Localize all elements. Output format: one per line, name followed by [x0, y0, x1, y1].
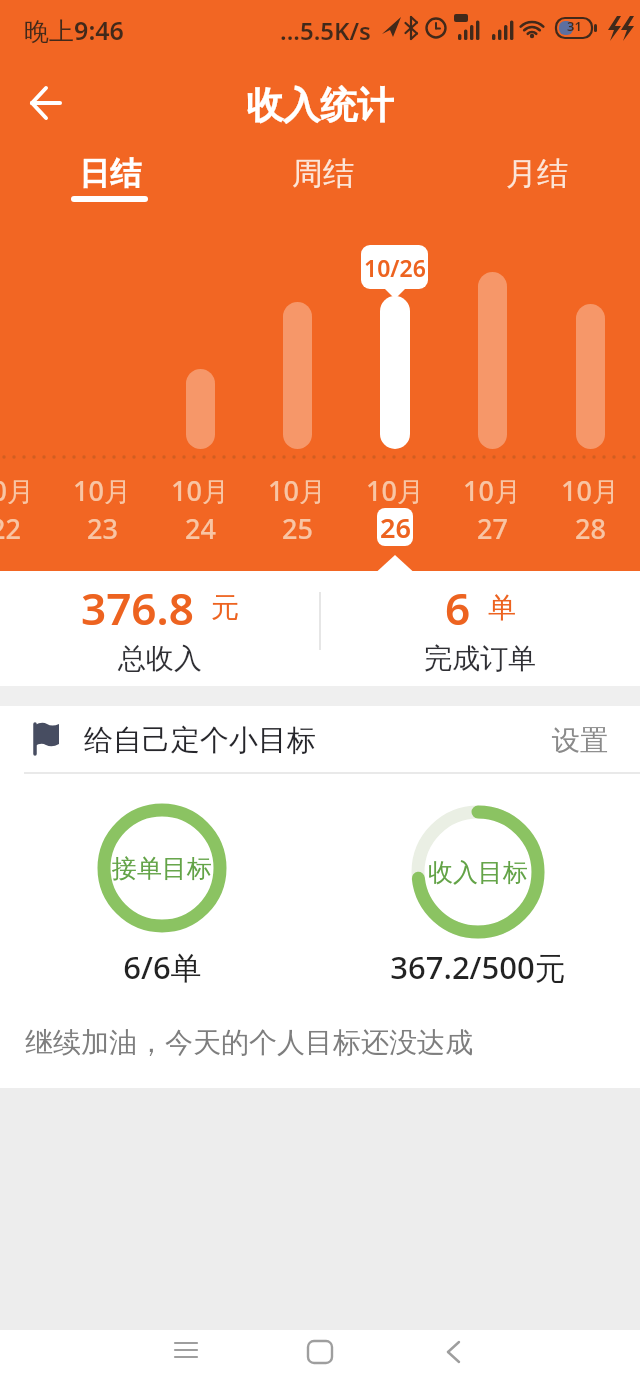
staticText: 10月	[463, 472, 521, 504]
staticText: 10月	[268, 472, 326, 504]
staticText: 收入目标	[428, 857, 528, 888]
staticText: 10月	[0, 472, 34, 504]
staticText: 23	[87, 510, 118, 542]
staticText: 10月	[73, 472, 131, 504]
button[interactable]: 周结	[213, 145, 426, 207]
staticText: 25	[282, 510, 313, 542]
button[interactable]: 376.8	[0, 578, 320, 630]
staticText: 31	[567, 17, 582, 35]
button[interactable]	[156, 1330, 216, 1376]
button[interactable]	[424, 1330, 484, 1376]
staticText: 367.2/500元	[390, 946, 566, 986]
staticText: 376.8	[81, 578, 194, 630]
staticText: 28	[575, 510, 606, 542]
staticText: 10月	[366, 472, 424, 504]
staticText: 22	[0, 510, 21, 542]
staticText: 6	[445, 578, 471, 630]
button[interactable]: 6	[320, 578, 640, 630]
staticText: 晚上9:46	[24, 13, 124, 47]
staticText: 总收入	[118, 641, 202, 676]
staticText: 给自己定个小目标	[84, 722, 316, 759]
button[interactable]: 日结	[0, 145, 213, 207]
staticText: 10月	[171, 472, 229, 504]
button[interactable]: 月结	[427, 145, 640, 207]
staticText: 设置	[552, 723, 608, 758]
staticText: 完成订单	[424, 641, 536, 676]
staticText: 收入统计	[246, 82, 394, 126]
staticText: 接单目标	[112, 853, 212, 884]
staticText: 元	[211, 590, 239, 625]
staticText: 周结	[292, 154, 354, 193]
staticText: 10月	[561, 472, 619, 504]
staticText: 日结	[79, 154, 141, 193]
staticText: 单	[488, 590, 516, 625]
staticText: 6/6单	[123, 946, 202, 986]
button[interactable]: 设置	[540, 720, 620, 760]
staticText: 继续加油，今天的个人目标还没达成	[25, 1025, 473, 1060]
staticText: ...5.5K/s	[280, 14, 371, 47]
staticText: 10/26	[364, 252, 426, 283]
staticText: 24	[185, 510, 216, 542]
button[interactable]	[18, 76, 74, 128]
button[interactable]	[290, 1330, 350, 1376]
staticText: 27	[477, 510, 508, 542]
staticText: 月结	[506, 154, 568, 193]
staticText: 26	[380, 509, 411, 546]
